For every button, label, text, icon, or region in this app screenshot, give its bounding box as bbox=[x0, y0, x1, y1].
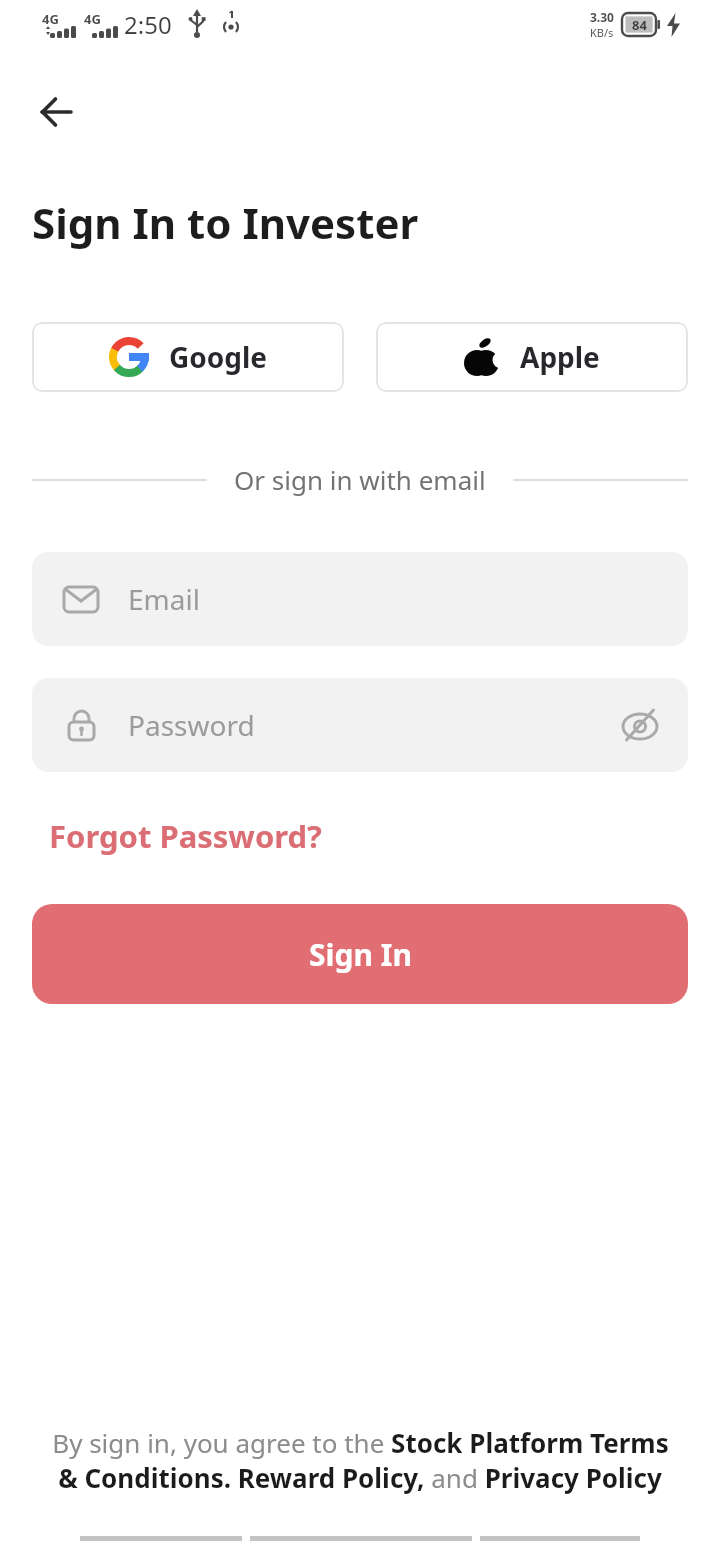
staticText: Google bbox=[169, 338, 268, 376]
button[interactable]: Google bbox=[32, 322, 344, 392]
staticText: 2:50 bbox=[124, 8, 172, 41]
staticText: Sign In bbox=[309, 934, 412, 975]
staticText: 84 bbox=[632, 16, 647, 34]
staticText: 4G bbox=[84, 10, 101, 28]
button[interactable] bbox=[620, 705, 660, 745]
staticText: Forgot Password? bbox=[49, 815, 322, 857]
button[interactable]: By sign in, you agree to the Stock Platf… bbox=[0, 1425, 720, 1495]
staticText: By sign in, you agree to the Stock Platf… bbox=[52, 1425, 669, 1460]
button[interactable] bbox=[40, 96, 76, 132]
button[interactable]: Sign In bbox=[32, 904, 688, 1004]
staticText: KB/s bbox=[590, 25, 614, 40]
staticText: Or sign in with email bbox=[234, 462, 486, 497]
button[interactable]: Apple bbox=[376, 322, 688, 392]
staticText: Email bbox=[128, 580, 200, 618]
button[interactable]: Forgot Password? bbox=[49, 815, 322, 857]
button[interactable]: Email bbox=[32, 552, 688, 646]
staticText: Password bbox=[128, 706, 255, 744]
button[interactable]: Password bbox=[32, 678, 688, 772]
staticText: Apple bbox=[520, 338, 600, 376]
staticText: 3.30 bbox=[590, 9, 614, 25]
staticText: Sign In to Invester bbox=[32, 194, 419, 251]
staticText: & Conditions. Reward Policy, and Privacy… bbox=[58, 1460, 662, 1495]
staticText: 4G bbox=[42, 10, 59, 28]
